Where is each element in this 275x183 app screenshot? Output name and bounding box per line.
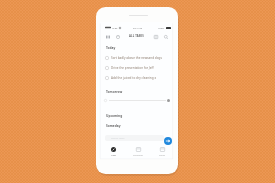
staticText: ALL TASKS (129, 34, 144, 38)
staticText: Drive the presentation for Jeff (111, 66, 154, 70)
staticText: AT&T (112, 26, 118, 29)
button[interactable]: Add the juiced to dry cleaning x (105, 73, 171, 82)
button[interactable]: Focus (153, 146, 171, 158)
button[interactable]: Sort (105, 34, 110, 39)
staticText: Add the juiced to dry cleaning x (111, 76, 157, 80)
staticText: Someday (106, 124, 121, 128)
button[interactable]: Search (163, 34, 168, 39)
button[interactable]: Calendar (153, 34, 158, 39)
button[interactable]: Timer (115, 34, 120, 39)
staticText: Upcoming (106, 114, 123, 118)
staticText: Tomorrow (106, 90, 123, 94)
staticText: 9:41 AM (133, 26, 143, 29)
staticText: Now (111, 154, 116, 157)
staticText: 100% (158, 26, 165, 29)
button[interactable]: Drive the presentation for Jeff (105, 63, 171, 72)
button[interactable]: Sort badly above the newsand dogs (105, 53, 171, 62)
staticText: Sort badly above the newsand dogs (111, 56, 162, 60)
button[interactable] (104, 96, 170, 104)
button[interactable]: Add task (164, 137, 172, 145)
staticText: Schedule (133, 154, 143, 157)
staticText: Search tasks (111, 137, 125, 140)
button[interactable]: Schedule (129, 146, 147, 158)
staticText: Focus (159, 154, 166, 157)
button[interactable]: Now (104, 146, 122, 158)
staticText: Today (106, 46, 116, 50)
